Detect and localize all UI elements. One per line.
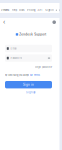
button[interactable]: Password (5, 54, 52, 62)
button[interactable]: Help (12, 9, 17, 12)
button[interactable]: Back (1, 19, 6, 24)
button[interactable]: our Terms (30, 74, 40, 77)
staticText: Pricing (27, 9, 35, 12)
button[interactable]: API (37, 9, 42, 12)
button[interactable]: Zendesk (1, 9, 9, 12)
staticText: Password (10, 57, 22, 60)
button[interactable]: Forgot password? (35, 66, 52, 68)
staticText: Email (10, 47, 17, 50)
button[interactable]: Email (5, 45, 52, 52)
staticText: Forgot password? (35, 66, 52, 68)
staticText: Sign in (45, 9, 53, 12)
staticText: our Terms (30, 74, 40, 77)
staticText: API (37, 9, 42, 12)
button[interactable]: Docs (19, 9, 24, 12)
staticText: Zendesk Support (19, 33, 46, 36)
staticText: Docs (19, 9, 24, 12)
staticText: Sign up (26, 91, 36, 94)
staticText: By continuing you accept (5, 74, 29, 77)
button[interactable]: Sign in (45, 9, 53, 12)
staticText: ‹ (3, 18, 5, 25)
button[interactable]: Sign in (5, 81, 52, 88)
staticText: Sign in (23, 83, 34, 86)
button[interactable]: Pricing (27, 9, 35, 12)
staticText: Zendesk (1, 9, 9, 12)
button[interactable]: Account (52, 20, 56, 24)
staticText: Help (12, 9, 17, 12)
button[interactable]: Sign up (0, 91, 62, 94)
